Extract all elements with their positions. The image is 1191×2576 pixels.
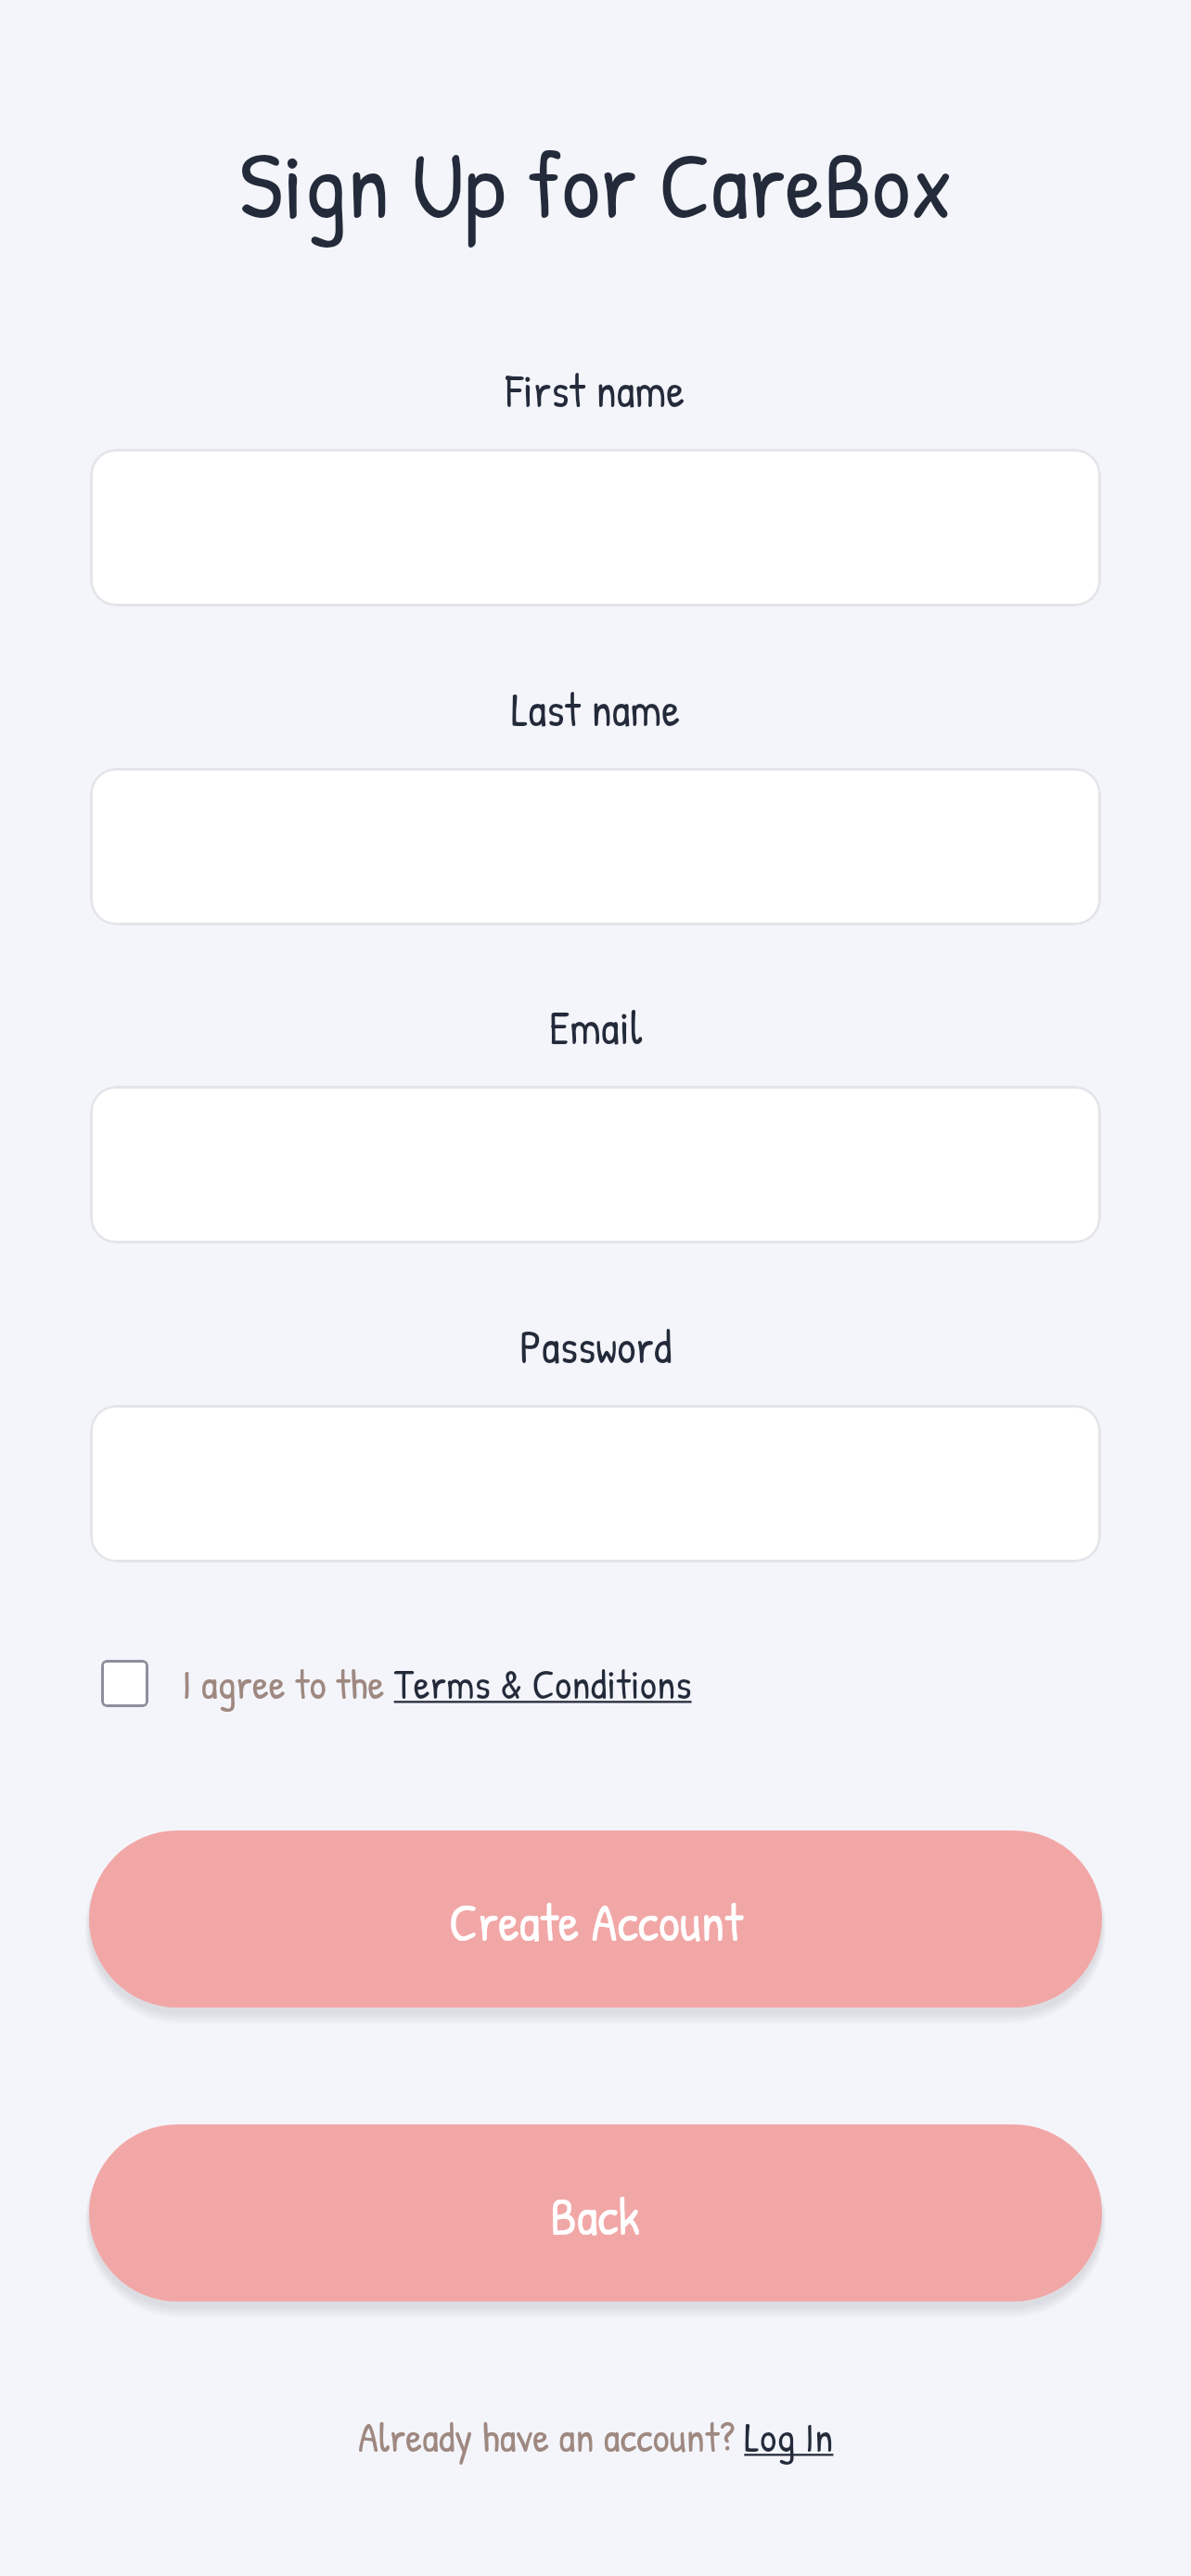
staticText: Sign Up for CareBox [238,119,954,248]
button[interactable]: Back [89,2124,1102,2302]
staticText: Create Account [449,1886,743,1958]
button[interactable]: Last name input field [90,768,1101,925]
staticText: Back [550,2180,641,2251]
button[interactable]: Email input field [90,1086,1101,1243]
button[interactable]: Already have an account? Log In [358,2408,834,2465]
button[interactable]: First name input field [90,449,1101,606]
staticText: Email [549,996,643,1059]
staticText: Last name [511,678,681,741]
staticText: Already have an account? Log In [358,2408,834,2465]
button[interactable]: Password input field [90,1405,1101,1562]
button[interactable]: Create Account [89,1830,1102,2008]
button[interactable]: Agree to Terms and Conditions checkbox [101,1655,692,1712]
staticText: Password [519,1315,672,1378]
staticText: First name [506,359,685,422]
staticText: I agree to the Terms & Conditions [182,1655,692,1712]
other: Agree to Terms and Conditions checkbox [101,1660,148,1707]
